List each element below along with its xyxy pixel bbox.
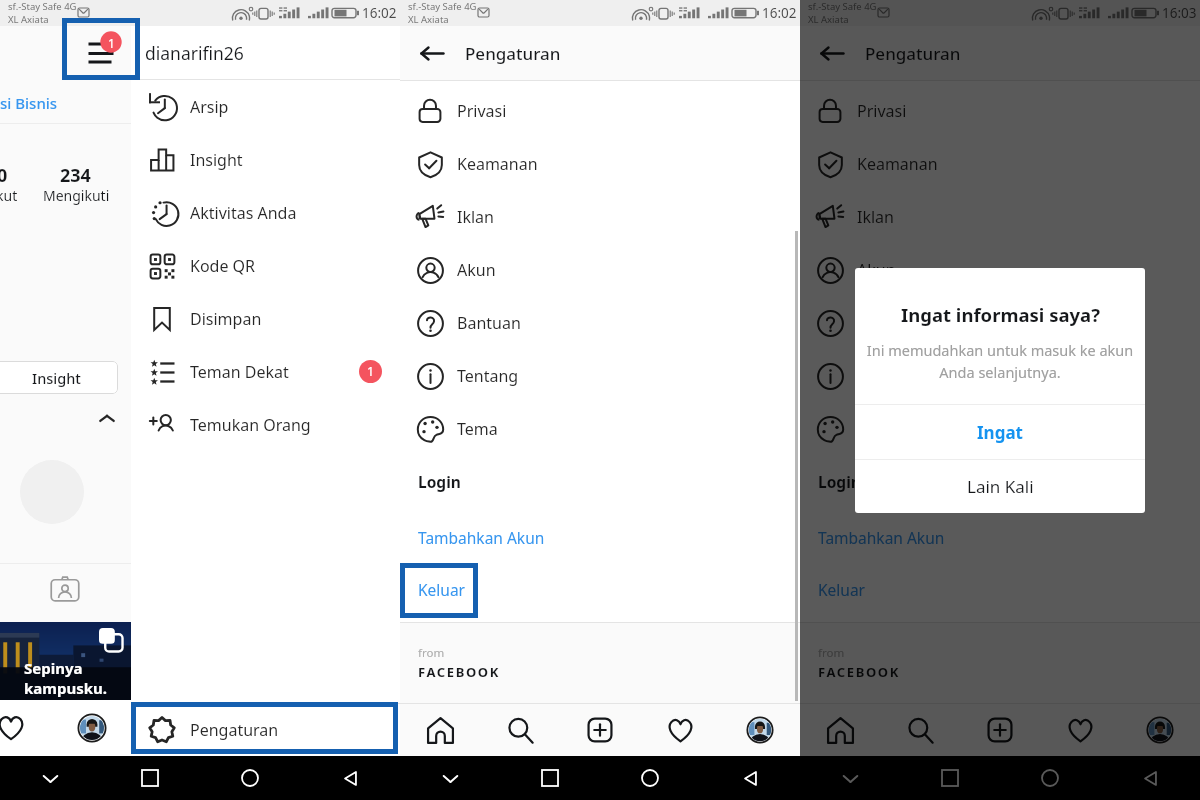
staticText: Akun bbox=[857, 259, 896, 281]
button[interactable]: Home bbox=[1000, 756, 1100, 800]
button[interactable]: Home bbox=[400, 704, 480, 756]
staticText: Login bbox=[418, 471, 461, 492]
button[interactable]: Tagged bbox=[49, 574, 81, 606]
button[interactable]: Tentang bbox=[800, 349, 1200, 402]
button[interactable]: Back bbox=[700, 756, 800, 800]
button[interactable]: Recents bbox=[900, 756, 1000, 800]
staticText: 1 bbox=[108, 35, 115, 49]
staticText: Privasi bbox=[457, 100, 507, 122]
button[interactable]: Teman Dekat bbox=[131, 345, 400, 398]
button[interactable]: Activity bbox=[640, 704, 720, 756]
button[interactable]: Hide bbox=[400, 756, 500, 800]
staticText: 1 bbox=[367, 363, 375, 380]
staticText: Pengaturan bbox=[190, 719, 279, 741]
button[interactable]: Search bbox=[480, 704, 560, 756]
staticText: Disimpan bbox=[190, 308, 262, 330]
other: Recents bbox=[942, 770, 958, 786]
staticText: 0 bbox=[0, 163, 8, 188]
button[interactable]: Bantuan bbox=[800, 296, 1200, 349]
button[interactable]: Akun bbox=[400, 243, 800, 296]
staticText: XL Axiata bbox=[808, 13, 849, 26]
button[interactable]: Menu bbox=[80, 30, 128, 78]
button[interactable]: Privasi bbox=[400, 84, 800, 137]
button[interactable]: Insight bbox=[131, 133, 400, 186]
staticText: Iklan bbox=[457, 206, 494, 228]
staticText: Privasi bbox=[857, 100, 907, 122]
button[interactable]: Back bbox=[300, 756, 400, 800]
button[interactable]: Keamanan bbox=[800, 137, 1200, 190]
other: Hide bbox=[842, 770, 859, 787]
button[interactable]: New post bbox=[560, 704, 640, 756]
button[interactable]: Tambahkan Akun bbox=[800, 522, 1200, 552]
staticText: Ini memudahkan untuk masuk ke akun Anda … bbox=[865, 340, 1135, 382]
button[interactable]: Pengaturan bbox=[131, 704, 400, 756]
button[interactable]: Bantuan bbox=[400, 296, 800, 349]
button[interactable]: Search bbox=[880, 704, 960, 756]
button[interactable]: Kode QR bbox=[131, 239, 400, 292]
button[interactable]: Recents bbox=[100, 756, 200, 800]
staticText: Bantuan bbox=[857, 312, 921, 334]
other: Home bbox=[241, 769, 259, 787]
other: Back bbox=[1142, 770, 1159, 787]
button[interactable]: Profile bbox=[1120, 704, 1200, 756]
staticText: Akun bbox=[457, 259, 496, 281]
staticText: Tambahkan Akun bbox=[818, 527, 945, 548]
button[interactable]: Ingat bbox=[855, 405, 1145, 459]
staticText: Iklan bbox=[857, 206, 894, 228]
button[interactable]: Insight bbox=[0, 361, 118, 394]
button[interactable]: Akun bbox=[800, 243, 1200, 296]
button[interactable]: Hide bbox=[800, 756, 900, 800]
button[interactable]: Back bbox=[414, 35, 450, 71]
button[interactable]: Privasi bbox=[800, 84, 1200, 137]
staticText: kampusku. bbox=[24, 678, 107, 698]
staticText: from bbox=[418, 645, 445, 661]
staticText: Lain Kali bbox=[967, 475, 1034, 498]
staticText: Keamanan bbox=[457, 153, 538, 175]
button[interactable]: Tema bbox=[400, 402, 800, 455]
staticText: kut bbox=[0, 186, 18, 205]
button[interactable]: Lain Kali bbox=[855, 460, 1145, 513]
button[interactable]: Iklan bbox=[800, 190, 1200, 243]
button[interactable]: Profile bbox=[720, 704, 800, 756]
staticText: 16:02 bbox=[762, 4, 797, 22]
button[interactable]: Temukan Orang bbox=[131, 398, 400, 451]
button[interactable]: Aktivitas Anda bbox=[131, 186, 400, 239]
staticText: Sepinya bbox=[24, 658, 83, 678]
button[interactable]: Hide bbox=[0, 756, 100, 800]
staticText: Tambahkan Akun bbox=[418, 527, 545, 548]
staticText: sf.-Stay Safe 4G bbox=[808, 0, 877, 13]
other: Hide bbox=[442, 770, 459, 787]
staticText: from bbox=[818, 645, 845, 661]
staticText: XL Axiata bbox=[408, 13, 449, 26]
staticText: Keamanan bbox=[857, 153, 938, 175]
button[interactable]: Keluar bbox=[400, 574, 800, 604]
other: Home bbox=[641, 769, 659, 787]
staticText: Keluar bbox=[418, 579, 466, 600]
staticText: Ingat informasi saya? bbox=[901, 302, 1100, 327]
other: Home bbox=[1041, 769, 1059, 787]
staticText: dianarifin26 bbox=[145, 41, 244, 65]
staticText: Login bbox=[818, 471, 861, 492]
staticText: Bantuan bbox=[457, 312, 521, 334]
button[interactable]: Home bbox=[600, 756, 700, 800]
staticText: Pengaturan bbox=[465, 42, 561, 65]
staticText: Mengikuti bbox=[43, 186, 110, 205]
staticText: XL Axiata bbox=[8, 13, 49, 26]
button[interactable]: Tambahkan Akun bbox=[400, 522, 800, 552]
button[interactable]: Tentang bbox=[400, 349, 800, 402]
button[interactable]: New post bbox=[960, 704, 1040, 756]
button[interactable]: Keamanan bbox=[400, 137, 800, 190]
other: Hide bbox=[42, 770, 59, 787]
other: Back bbox=[742, 770, 759, 787]
staticText: Pengaturan bbox=[865, 42, 961, 65]
button[interactable]: Activity bbox=[1040, 704, 1120, 756]
button[interactable]: Tema bbox=[800, 402, 1200, 455]
button[interactable]: Arsip bbox=[131, 80, 400, 133]
button[interactable]: Back bbox=[1100, 756, 1200, 800]
button[interactable]: Keluar bbox=[800, 574, 1200, 604]
button[interactable]: Iklan bbox=[400, 190, 800, 243]
button[interactable]: Home bbox=[200, 756, 300, 800]
button[interactable]: Disimpan bbox=[131, 292, 400, 345]
button[interactable]: Home bbox=[800, 704, 880, 756]
button[interactable]: Recents bbox=[500, 756, 600, 800]
